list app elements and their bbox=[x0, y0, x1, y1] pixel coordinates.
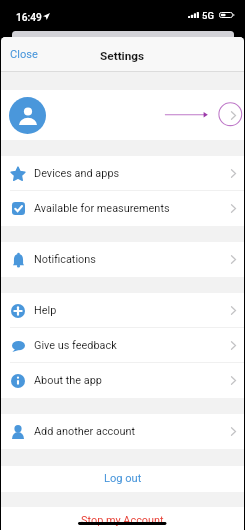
other: Highlight annotation bbox=[0, 0, 245, 530]
button[interactable]: Notifications bbox=[1, 242, 244, 277]
button[interactable]: Help bbox=[1, 293, 244, 328]
staticText: Add another account bbox=[34, 425, 136, 438]
button[interactable]: Available for measurements bbox=[1, 191, 244, 226]
button[interactable]: Devices and apps bbox=[1, 156, 244, 191]
button[interactable] bbox=[1, 90, 244, 140]
staticText: 16:49 bbox=[16, 12, 42, 24]
staticText: Available for measurements bbox=[34, 202, 170, 215]
button[interactable]: About the app bbox=[1, 363, 244, 398]
staticText: Log out bbox=[104, 472, 142, 485]
button[interactable]: Add another account bbox=[1, 414, 244, 449]
button[interactable]: Stop my Account bbox=[1, 507, 244, 530]
staticText: Help bbox=[34, 304, 57, 317]
staticText: 5G bbox=[202, 10, 214, 21]
button[interactable]: Log out bbox=[1, 466, 244, 492]
staticText: Settings bbox=[100, 49, 145, 63]
staticText: Notifications bbox=[34, 253, 96, 266]
staticText: Stop my Account bbox=[81, 514, 164, 527]
button[interactable]: Give us feedback bbox=[1, 328, 244, 363]
staticText: Close bbox=[10, 48, 38, 61]
button[interactable]: Close bbox=[10, 48, 38, 61]
staticText: About the app bbox=[34, 374, 102, 387]
staticText: Devices and apps bbox=[34, 167, 120, 180]
staticText: Give us feedback bbox=[34, 339, 117, 352]
